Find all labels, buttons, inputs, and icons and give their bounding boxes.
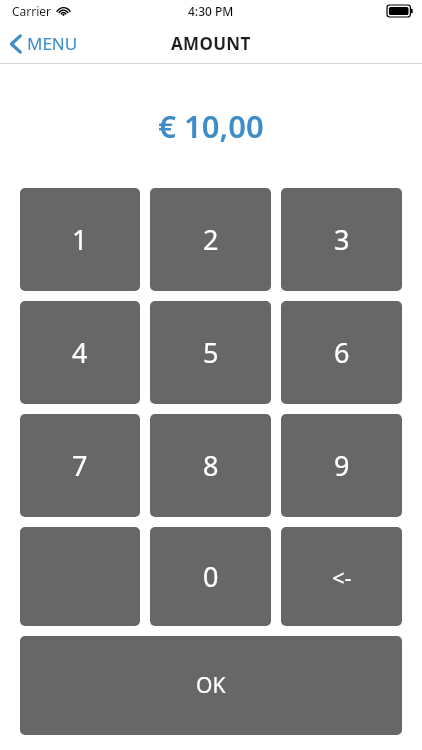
staticText: Carrier bbox=[12, 3, 52, 19]
button[interactable]: 6 bbox=[281, 301, 402, 404]
staticText: 3 bbox=[334, 221, 350, 258]
staticText: 2 bbox=[203, 221, 219, 258]
button[interactable]: 3 bbox=[281, 188, 402, 291]
other: Back bbox=[10, 34, 22, 54]
staticText: € 10,00 bbox=[158, 105, 264, 147]
button[interactable]: 4 bbox=[20, 301, 140, 404]
staticText: 1 bbox=[72, 221, 88, 258]
button[interactable]: Backspace bbox=[281, 527, 402, 626]
staticText: AMOUNT bbox=[171, 32, 251, 55]
staticText: OK bbox=[196, 671, 226, 700]
staticText: MENU bbox=[27, 32, 78, 55]
staticText: 4:30 PM bbox=[188, 3, 234, 19]
staticText: 5 bbox=[203, 334, 219, 371]
button[interactable]: 0 bbox=[150, 527, 271, 626]
button[interactable]: OK bbox=[20, 636, 402, 735]
staticText: 7 bbox=[72, 447, 88, 484]
button[interactable]: Back bbox=[0, 26, 90, 61]
staticText: 0 bbox=[203, 558, 219, 595]
staticText: 9 bbox=[334, 447, 350, 484]
staticText: 8 bbox=[203, 447, 219, 484]
staticText: 6 bbox=[334, 334, 350, 371]
button[interactable]: 1 bbox=[20, 188, 140, 291]
button[interactable]: 5 bbox=[150, 301, 271, 404]
button[interactable]: 9 bbox=[281, 414, 402, 517]
button[interactable]: 2 bbox=[150, 188, 271, 291]
button[interactable]: 7 bbox=[20, 414, 140, 517]
button[interactable]: 8 bbox=[150, 414, 271, 517]
staticText: 4 bbox=[72, 334, 88, 371]
staticText: <- bbox=[332, 562, 352, 592]
button[interactable]: Blank key bbox=[20, 527, 140, 626]
